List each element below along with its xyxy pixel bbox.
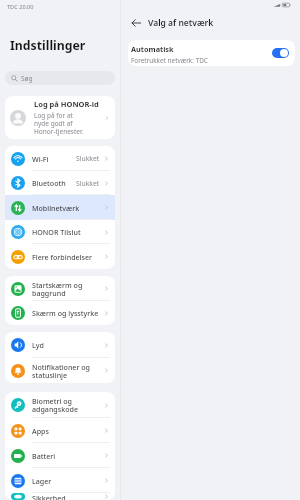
button[interactable]: Automatisk toggle	[272, 48, 289, 58]
button[interactable]: Batteri	[5, 443, 115, 468]
staticText: Biometri og adgangskode	[32, 396, 103, 414]
button[interactable]: HONOR Tilslut	[5, 220, 115, 244]
staticText: Startskærm og baggrund	[32, 280, 103, 298]
button[interactable]: Lyd	[5, 332, 115, 358]
button[interactable]: Søg	[5, 71, 115, 85]
staticText: Søg	[21, 74, 33, 83]
staticText: Sikkerhed	[32, 493, 103, 500]
button[interactable]: Skærm og lysstyrke	[5, 301, 115, 325]
button[interactable]: Notifikationer og statuslinje	[5, 358, 115, 383]
staticText: Skærm og lysstyrke	[32, 308, 103, 318]
staticText: Batteri	[32, 451, 103, 461]
staticText: Bluetooth	[32, 178, 76, 188]
staticText: Log på HONOR-id	[34, 99, 99, 109]
staticText: Lager	[32, 476, 103, 486]
staticText: Wi-Fi	[32, 154, 76, 164]
staticText: Automatisk	[131, 44, 174, 54]
staticText: Lyd	[32, 340, 103, 350]
button[interactable]: Back	[129, 16, 143, 30]
staticText: Foretrukket netværk: TDC	[131, 56, 208, 65]
button[interactable]: Bluetooth	[5, 171, 115, 195]
button[interactable]: Flere forbindelser	[5, 244, 115, 269]
button[interactable]: Log på HONOR-id	[5, 96, 115, 139]
staticText: Valg af netværk	[148, 17, 214, 29]
staticText: TDC 20.00	[7, 3, 34, 11]
staticText: Flere forbindelser	[32, 252, 103, 262]
staticText: Indstillinger	[10, 37, 86, 54]
staticText: Mobilnetværk	[32, 203, 103, 213]
button[interactable]: Mobilnetværk	[5, 195, 115, 220]
staticText: Log på for at nyde godt af Honor-tjenest…	[34, 111, 84, 136]
staticText: Slukket	[76, 179, 100, 188]
button[interactable]: Wi-Fi	[5, 146, 115, 171]
staticText: Notifikationer og statuslinje	[32, 362, 103, 380]
button[interactable]: Apps	[5, 418, 115, 443]
button[interactable]: Automatisk	[128, 40, 295, 66]
button[interactable]: Sikkerhed	[5, 493, 115, 500]
button[interactable]: Lager	[5, 468, 115, 493]
staticText: Slukket	[76, 154, 100, 163]
button[interactable]: Startskærm og baggrund	[5, 276, 115, 301]
staticText: HONOR Tilslut	[32, 227, 103, 237]
button[interactable]: Biometri og adgangskode	[5, 392, 115, 418]
staticText: Apps	[32, 426, 103, 436]
